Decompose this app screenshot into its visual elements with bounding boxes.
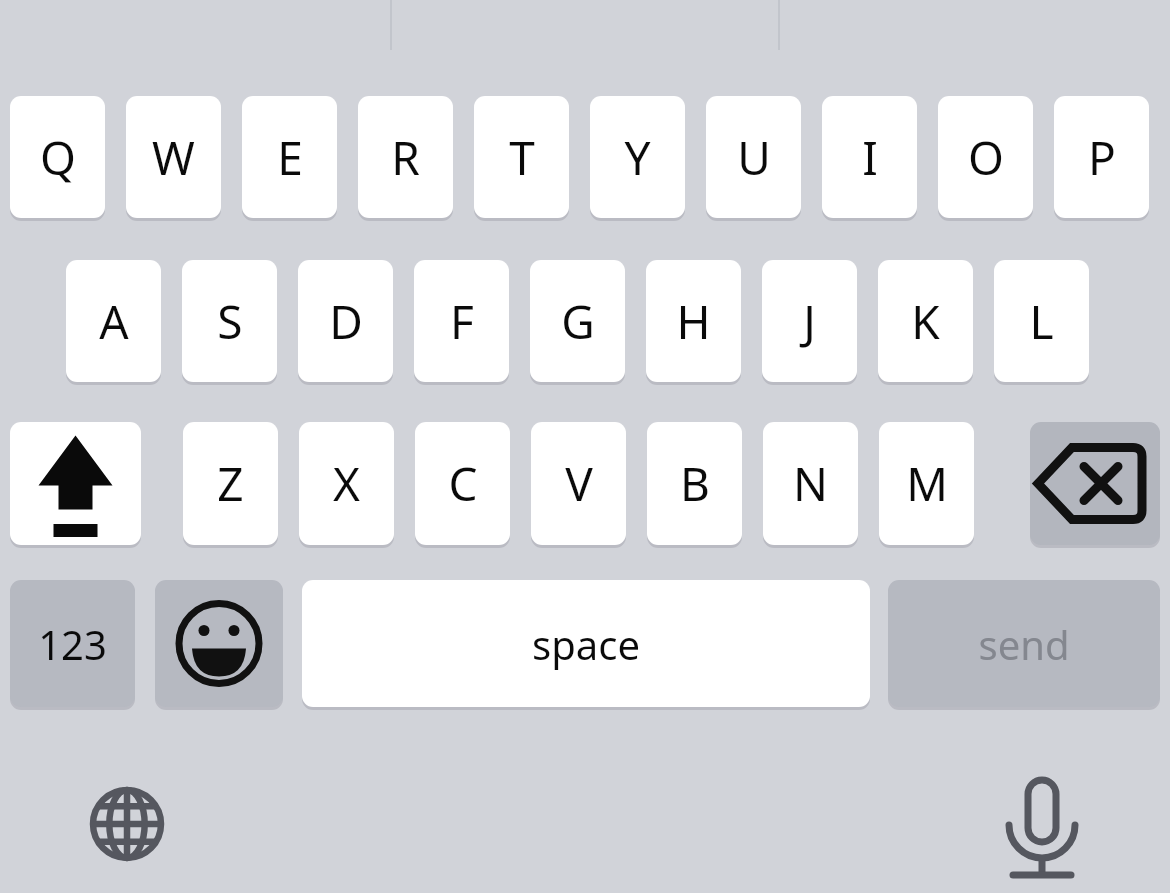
button[interactable]: R bbox=[358, 96, 453, 218]
button[interactable]: Shift bbox=[10, 422, 141, 545]
button[interactable]: G bbox=[530, 260, 625, 382]
button[interactable]: N bbox=[763, 422, 858, 545]
staticText: R bbox=[391, 126, 420, 189]
button[interactable]: S bbox=[182, 260, 277, 382]
staticText: B bbox=[680, 452, 710, 515]
staticText: O bbox=[968, 126, 1004, 189]
button[interactable]: Emoji bbox=[155, 580, 283, 707]
staticText: N bbox=[793, 452, 828, 515]
staticText: F bbox=[450, 290, 474, 353]
staticText: H bbox=[676, 290, 711, 353]
staticText: G bbox=[561, 290, 595, 353]
staticText: D bbox=[329, 290, 363, 353]
staticText: K bbox=[911, 290, 940, 353]
button[interactable]: Z bbox=[183, 422, 278, 545]
staticText: A bbox=[99, 290, 129, 353]
staticText: I bbox=[862, 126, 878, 189]
staticText: 123 bbox=[38, 617, 107, 671]
staticText: X bbox=[333, 452, 360, 515]
button[interactable]: 123 bbox=[10, 580, 135, 707]
button[interactable]: A bbox=[66, 260, 161, 382]
button[interactable]: H bbox=[646, 260, 741, 382]
staticText: U bbox=[737, 126, 771, 189]
button[interactable]: I bbox=[822, 96, 917, 218]
staticText: V bbox=[565, 452, 593, 515]
staticText: W bbox=[152, 126, 195, 189]
button[interactable]: Change keyboard language bbox=[79, 776, 175, 872]
button[interactable]: X bbox=[299, 422, 394, 545]
button[interactable]: Backspace bbox=[1030, 422, 1160, 545]
button[interactable]: W bbox=[126, 96, 221, 218]
button[interactable]: C bbox=[415, 422, 510, 545]
button[interactable]: J bbox=[762, 260, 857, 382]
button[interactable]: O bbox=[938, 96, 1033, 218]
staticText: S bbox=[217, 290, 243, 353]
button[interactable]: space bbox=[302, 580, 870, 707]
button[interactable]: F bbox=[414, 260, 509, 382]
staticText: E bbox=[277, 126, 303, 189]
button[interactable]: Dictation bbox=[994, 775, 1090, 871]
button[interactable]: E bbox=[242, 96, 337, 218]
staticText: Y bbox=[624, 126, 651, 189]
staticText: J bbox=[803, 290, 816, 353]
staticText: space bbox=[532, 617, 640, 671]
button[interactable]: B bbox=[647, 422, 742, 545]
button[interactable]: U bbox=[706, 96, 801, 218]
button[interactable]: send bbox=[888, 580, 1160, 707]
staticText: Z bbox=[217, 452, 244, 515]
staticText: T bbox=[509, 126, 535, 189]
staticText: send bbox=[978, 617, 1070, 671]
button[interactable]: T bbox=[474, 96, 569, 218]
staticText: L bbox=[1029, 290, 1054, 353]
button[interactable]: Y bbox=[590, 96, 685, 218]
button[interactable]: K bbox=[878, 260, 973, 382]
button[interactable]: D bbox=[298, 260, 393, 382]
button[interactable]: L bbox=[994, 260, 1089, 382]
button[interactable]: Q bbox=[10, 96, 105, 218]
button[interactable]: V bbox=[531, 422, 626, 545]
staticText: Q bbox=[40, 126, 76, 189]
button[interactable]: M bbox=[879, 422, 974, 545]
staticText: C bbox=[448, 452, 478, 515]
button[interactable]: P bbox=[1054, 96, 1149, 218]
staticText: P bbox=[1088, 126, 1116, 189]
staticText: M bbox=[906, 452, 948, 515]
